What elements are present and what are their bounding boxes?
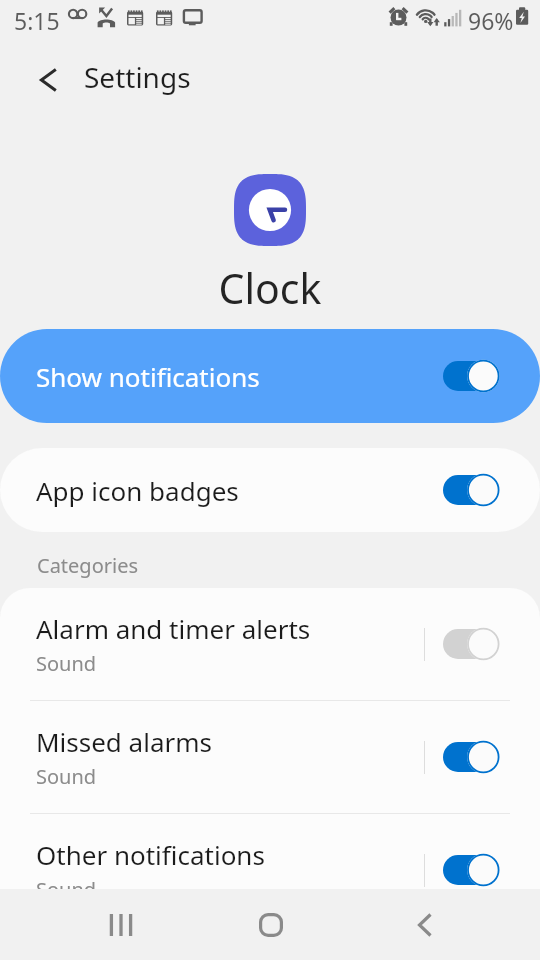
staticText: Alarm and timer alerts xyxy=(36,611,311,646)
staticText: Sound xyxy=(36,650,97,677)
button[interactable]: Navigate up xyxy=(26,58,70,102)
button[interactable]: Recent apps xyxy=(87,891,155,959)
button[interactable]: Home xyxy=(237,891,305,959)
button[interactable]: Turn off xyxy=(443,472,500,508)
staticText: 96% xyxy=(468,5,514,36)
button[interactable]: Alarm and timer alerts xyxy=(0,588,540,700)
staticText: Settings xyxy=(84,58,191,96)
staticText: 5:15 xyxy=(14,5,60,36)
button[interactable]: Turn on xyxy=(443,626,500,662)
button[interactable]: Turn off xyxy=(443,852,500,888)
staticText: Sound xyxy=(36,763,97,790)
button[interactable]: Turn off xyxy=(443,739,500,775)
staticText: Categories xyxy=(37,552,139,579)
staticText: Show notifications xyxy=(36,359,260,394)
staticText: Sound xyxy=(36,876,97,903)
staticText: Other notifications xyxy=(36,837,265,872)
button[interactable]: Back xyxy=(391,891,459,959)
staticText: Clock xyxy=(0,260,540,316)
staticText: App icon badges xyxy=(36,473,239,508)
button[interactable]: Turn off xyxy=(443,358,500,394)
button[interactable]: Missed alarms xyxy=(0,701,540,813)
button[interactable]: Show notifications xyxy=(0,329,540,423)
staticText: Missed alarms xyxy=(36,724,212,759)
button[interactable]: Other notifications xyxy=(0,814,540,926)
button[interactable]: App icon badges xyxy=(0,448,540,532)
